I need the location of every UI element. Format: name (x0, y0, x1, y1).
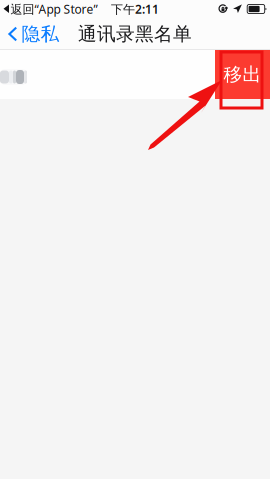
staticText: 下午2:11 (111, 1, 159, 17)
button[interactable]: 返回“App Store” (0, 0, 97, 18)
button[interactable]: 移出 (215, 50, 270, 99)
staticText: 返回“App Store” (10, 1, 97, 17)
button[interactable]: 隐私 (0, 18, 68, 50)
staticText: 移出 (223, 63, 261, 86)
staticText: 通讯录黑名单 (78, 22, 192, 45)
button[interactable] (0, 50, 215, 99)
staticText: 隐私 (22, 22, 60, 45)
